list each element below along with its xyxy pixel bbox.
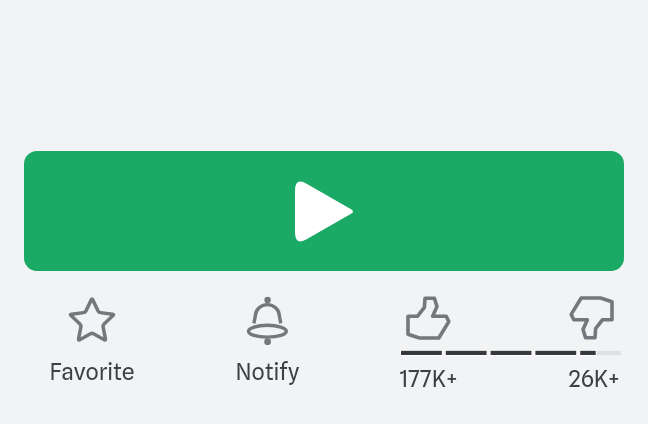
staticText: Notify [235,358,300,386]
other: Notify [242,296,292,346]
button[interactable]: Dislike [567,293,617,343]
button[interactable]: Notify [217,296,317,386]
button[interactable]: Like [403,293,453,343]
other: Rating [400,349,622,357]
staticText: 177K+ [399,365,458,393]
button[interactable]: Favorite [42,296,142,386]
staticText: 26K+ [568,365,620,393]
staticText: Favorite [49,358,135,386]
button[interactable]: Play [24,151,624,271]
other: Favorite [67,296,117,346]
